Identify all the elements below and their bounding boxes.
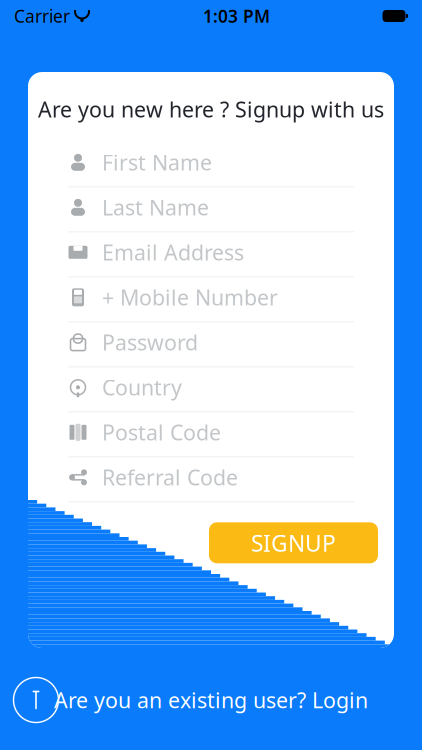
- staticText: Last Name: [102, 193, 209, 221]
- button[interactable]: Referral Code: [68, 456, 354, 501]
- staticText: Referral Code: [102, 463, 238, 491]
- staticText: Postal Code: [102, 418, 221, 446]
- button[interactable]: + Mobile Number: [68, 276, 354, 321]
- staticText: Country: [102, 373, 182, 401]
- button[interactable]: Country: [68, 366, 354, 411]
- button[interactable]: Email Address: [68, 231, 354, 276]
- staticText: SIGNUP: [251, 528, 336, 558]
- button[interactable]: Postal Code: [68, 411, 354, 456]
- button[interactable]: First Name: [68, 141, 354, 186]
- button[interactable]: Are you an existing user? Login: [46, 680, 376, 720]
- staticText: + Mobile Number: [102, 283, 278, 311]
- staticText: Are you an existing user? Login: [54, 686, 368, 714]
- button[interactable]: Password: [68, 321, 354, 366]
- staticText: First Name: [102, 148, 212, 176]
- staticText: Are you new here ? Signup with us: [38, 95, 384, 123]
- staticText: Carrier: [14, 4, 70, 27]
- button[interactable]: Last Name: [68, 186, 354, 231]
- staticText: Email Address: [102, 238, 244, 266]
- button[interactable]: Scroll to top: [8, 672, 64, 728]
- button[interactable]: SIGNUP: [209, 522, 378, 563]
- staticText: Password: [102, 328, 198, 356]
- staticText: 1:03 PM: [203, 4, 270, 27]
